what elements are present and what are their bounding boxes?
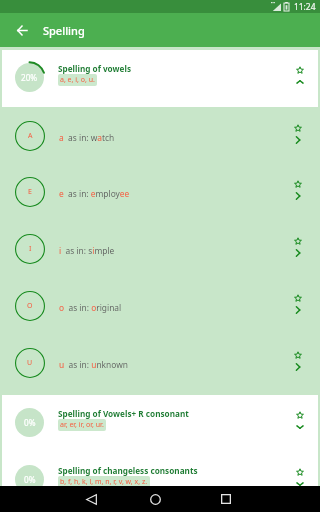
staticText: b, f, h, k, l, m, n, r, v, w, x, z.: [60, 477, 148, 487]
staticText: 0%: [24, 474, 36, 485]
button[interactable]: Recents: [212, 486, 239, 512]
button[interactable]: O: [0, 278, 320, 335]
button[interactable]: E: [0, 164, 320, 221]
button[interactable]: Open: [288, 243, 308, 263]
button[interactable]: Favorite: [290, 405, 310, 425]
staticText: 11:24: [294, 1, 316, 12]
button[interactable]: Favorite: [288, 174, 308, 194]
staticText: 0%: [24, 417, 36, 428]
button[interactable]: U: [0, 335, 320, 392]
button[interactable]: Open: [288, 300, 308, 320]
button[interactable]: Favorite: [290, 60, 310, 80]
button[interactable]: Back: [78, 486, 105, 512]
button[interactable]: Favorite: [288, 118, 308, 138]
button[interactable]: Expand: [290, 417, 310, 437]
button[interactable]: Favorite: [290, 462, 310, 482]
staticText: Spelling of Vowels+ R consonant: [58, 408, 189, 419]
staticText: e as in: employee: [59, 188, 130, 199]
staticText: Spelling: [43, 23, 85, 38]
button[interactable]: A: [0, 108, 320, 165]
button[interactable]: Favorite: [288, 288, 308, 308]
staticText: ar, er, ir, or, ur.: [60, 420, 104, 430]
staticText: a as in: watch: [59, 132, 115, 143]
button[interactable]: Favorite: [288, 231, 308, 251]
staticText: u as in: unknown: [59, 359, 128, 370]
staticText: Spelling of vowels: [58, 63, 132, 74]
staticText: 20%: [21, 72, 38, 83]
staticText: O: [27, 301, 33, 311]
staticText: Spelling of changeless consonants: [58, 465, 198, 476]
button[interactable]: 0%: [2, 395, 318, 452]
button[interactable]: Back: [0, 13, 43, 47]
button[interactable]: Open: [288, 130, 308, 150]
button[interactable]: 20%: [2, 50, 318, 107]
button[interactable]: Open: [288, 357, 308, 377]
staticText: A: [28, 131, 33, 141]
button[interactable]: Expand: [290, 474, 310, 494]
staticText: i as in: simple: [59, 245, 115, 256]
button[interactable]: Favorite: [288, 345, 308, 365]
staticText: a, e, i, o, u.: [60, 75, 95, 85]
button[interactable]: I: [0, 221, 320, 278]
staticText: E: [28, 187, 32, 197]
staticText: o as in: original: [59, 302, 122, 313]
button[interactable]: Collapse: [290, 72, 310, 92]
button[interactable]: Home: [142, 486, 169, 512]
staticText: U: [27, 358, 33, 368]
button[interactable]: 0%: [2, 452, 318, 509]
button[interactable]: Open: [288, 186, 308, 206]
staticText: I: [29, 244, 32, 254]
